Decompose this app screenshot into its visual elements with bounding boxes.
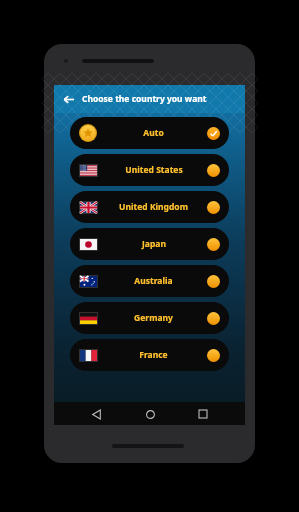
staticText: United Kingdom — [119, 201, 188, 213]
button[interactable]: Back — [85, 403, 107, 425]
button[interactable]: Recents — [192, 403, 214, 425]
staticText: Germany — [134, 312, 173, 324]
button[interactable]: Japan — [70, 228, 229, 260]
button[interactable]: Auto — [70, 117, 229, 149]
staticText: Auto — [143, 127, 164, 139]
button[interactable]: Germany — [70, 302, 229, 334]
staticText: Japan — [142, 238, 166, 250]
button[interactable]: United States — [70, 154, 229, 186]
staticText: United States — [125, 164, 183, 176]
staticText: Choose the country you want — [82, 93, 207, 105]
staticText: France — [139, 349, 168, 361]
button[interactable]: France — [70, 339, 229, 371]
button[interactable]: United Kingdom — [70, 191, 229, 223]
button[interactable]: Back — [58, 89, 78, 109]
button[interactable]: Australia — [70, 265, 229, 297]
button[interactable]: Home — [139, 403, 161, 425]
staticText: Australia — [134, 275, 173, 287]
